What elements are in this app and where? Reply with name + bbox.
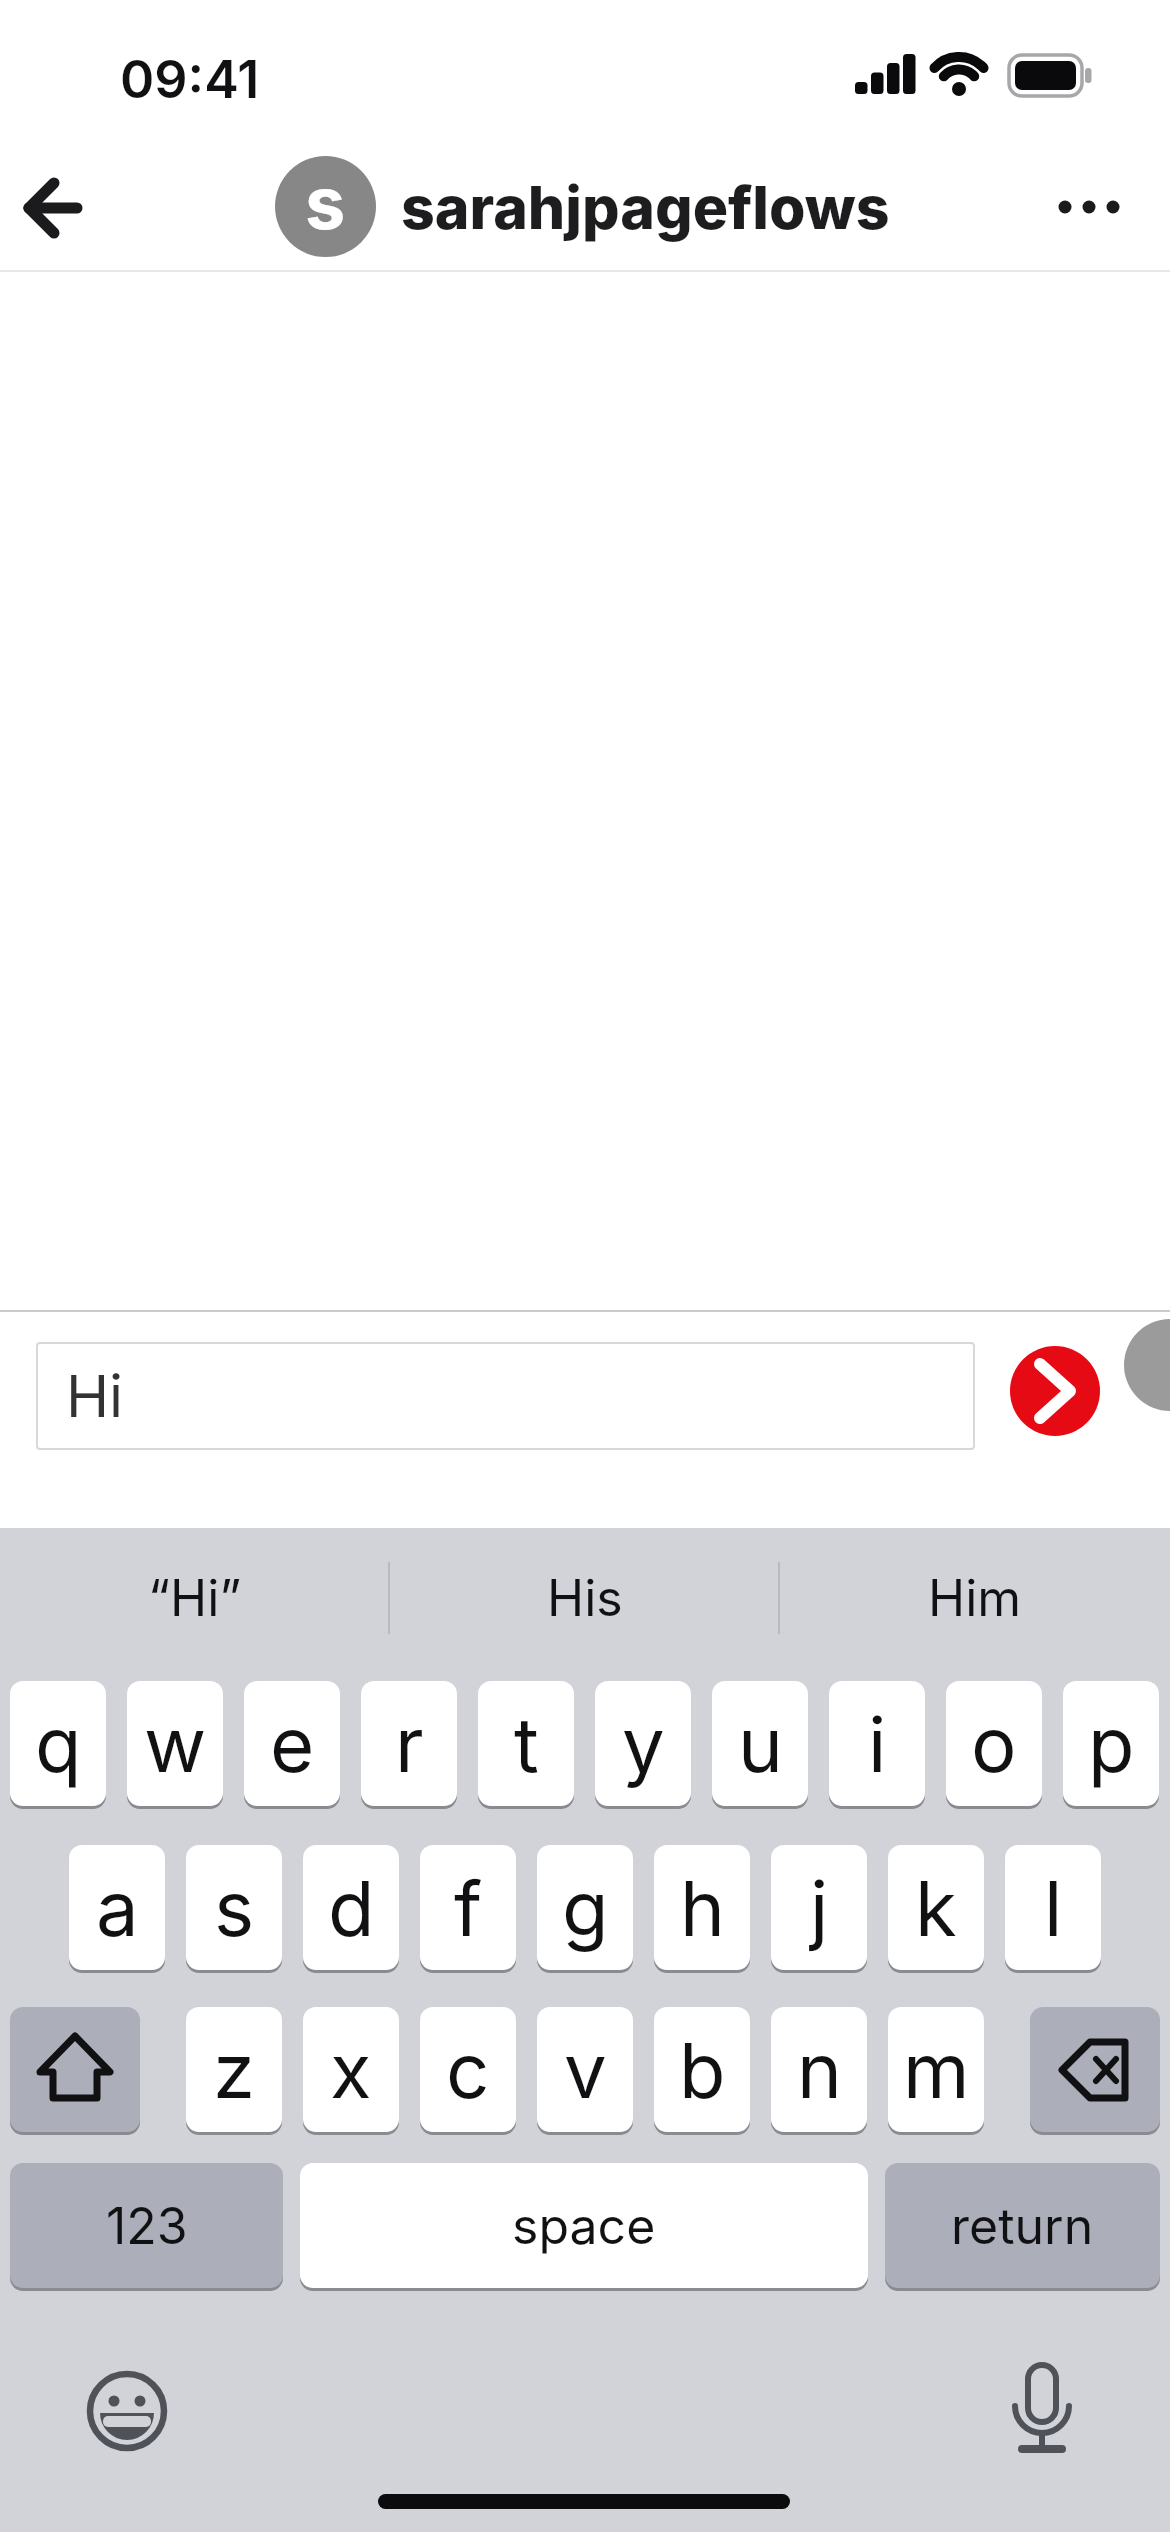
staticText: His xyxy=(547,1568,623,1628)
button[interactable]: s xyxy=(275,156,376,257)
staticText: x xyxy=(330,2024,372,2116)
staticText: o xyxy=(971,1698,1017,1790)
button[interactable]: l xyxy=(1005,1845,1101,1970)
staticText: “Hi” xyxy=(148,1568,242,1628)
staticText: g xyxy=(562,1862,609,1954)
button[interactable]: x xyxy=(303,2007,399,2132)
button[interactable]: i xyxy=(829,1681,925,1806)
button[interactable]: Hi xyxy=(36,1342,975,1450)
staticText: b xyxy=(679,2024,726,2116)
staticText: z xyxy=(213,2024,255,2116)
button[interactable]: q xyxy=(10,1681,106,1806)
staticText: Hi xyxy=(66,1361,124,1431)
button[interactable]: n xyxy=(771,2007,867,2132)
button[interactable]: b xyxy=(654,2007,750,2132)
button[interactable] xyxy=(20,150,135,265)
staticText: return xyxy=(951,2196,1094,2256)
staticText: n xyxy=(797,2024,842,2116)
staticText: v xyxy=(564,2024,607,2116)
button[interactable] xyxy=(77,2361,177,2461)
button[interactable]: h xyxy=(654,1845,750,1970)
button[interactable]: o xyxy=(946,1681,1042,1806)
staticText: j xyxy=(810,1862,829,1954)
staticText: i xyxy=(868,1698,887,1790)
button[interactable]: v xyxy=(537,2007,633,2132)
staticText: y xyxy=(622,1698,665,1790)
button[interactable]: z xyxy=(186,2007,282,2132)
staticText: p xyxy=(1088,1698,1135,1790)
staticText: space xyxy=(512,2196,656,2256)
staticText: e xyxy=(270,1698,315,1790)
staticText: c xyxy=(446,2024,490,2116)
staticText: sarahjpageflows xyxy=(401,172,890,243)
staticText: l xyxy=(1044,1862,1063,1954)
staticText: 123 xyxy=(106,2196,188,2256)
button[interactable]: e xyxy=(244,1681,340,1806)
button[interactable]: f xyxy=(420,1845,516,1970)
button[interactable]: t xyxy=(478,1681,574,1806)
button[interactable]: w xyxy=(127,1681,223,1806)
staticText: m xyxy=(903,2024,970,2116)
button[interactable]: d xyxy=(303,1845,399,1970)
staticText: 09:41 xyxy=(120,48,260,108)
button[interactable]: k xyxy=(888,1845,984,1970)
staticText: h xyxy=(680,1862,725,1954)
button[interactable]: “Hi” xyxy=(0,1545,389,1650)
staticText: d xyxy=(328,1862,375,1954)
button[interactable]: y xyxy=(595,1681,691,1806)
button[interactable]: return xyxy=(885,2163,1160,2288)
staticText: Him xyxy=(928,1568,1022,1628)
staticText: f xyxy=(454,1862,483,1954)
staticText: s xyxy=(305,159,346,246)
button[interactable]: u xyxy=(712,1681,808,1806)
staticText: r xyxy=(395,1698,424,1790)
button[interactable]: r xyxy=(361,1681,457,1806)
button[interactable] xyxy=(1010,1346,1100,1436)
button[interactable]: His xyxy=(390,1545,779,1650)
button[interactable] xyxy=(10,2007,140,2132)
staticText: a xyxy=(96,1862,139,1954)
staticText: q xyxy=(35,1698,82,1790)
button[interactable] xyxy=(1030,2007,1160,2132)
button[interactable]: space xyxy=(300,2163,868,2288)
button[interactable]: m xyxy=(888,2007,984,2132)
staticText: s xyxy=(214,1862,255,1954)
button[interactable]: c xyxy=(420,2007,516,2132)
staticText: u xyxy=(738,1698,783,1790)
button[interactable]: a xyxy=(69,1845,165,1970)
button[interactable] xyxy=(1040,160,1140,255)
button[interactable]: p xyxy=(1063,1681,1159,1806)
staticText: t xyxy=(514,1698,539,1790)
button[interactable]: g xyxy=(537,1845,633,1970)
button[interactable]: Him xyxy=(780,1545,1170,1650)
button[interactable]: s xyxy=(186,1845,282,1970)
button[interactable] xyxy=(992,2360,1092,2460)
button[interactable]: j xyxy=(771,1845,867,1970)
staticText: k xyxy=(915,1862,957,1954)
staticText: w xyxy=(144,1698,207,1790)
button[interactable]: 123 xyxy=(10,2163,283,2288)
